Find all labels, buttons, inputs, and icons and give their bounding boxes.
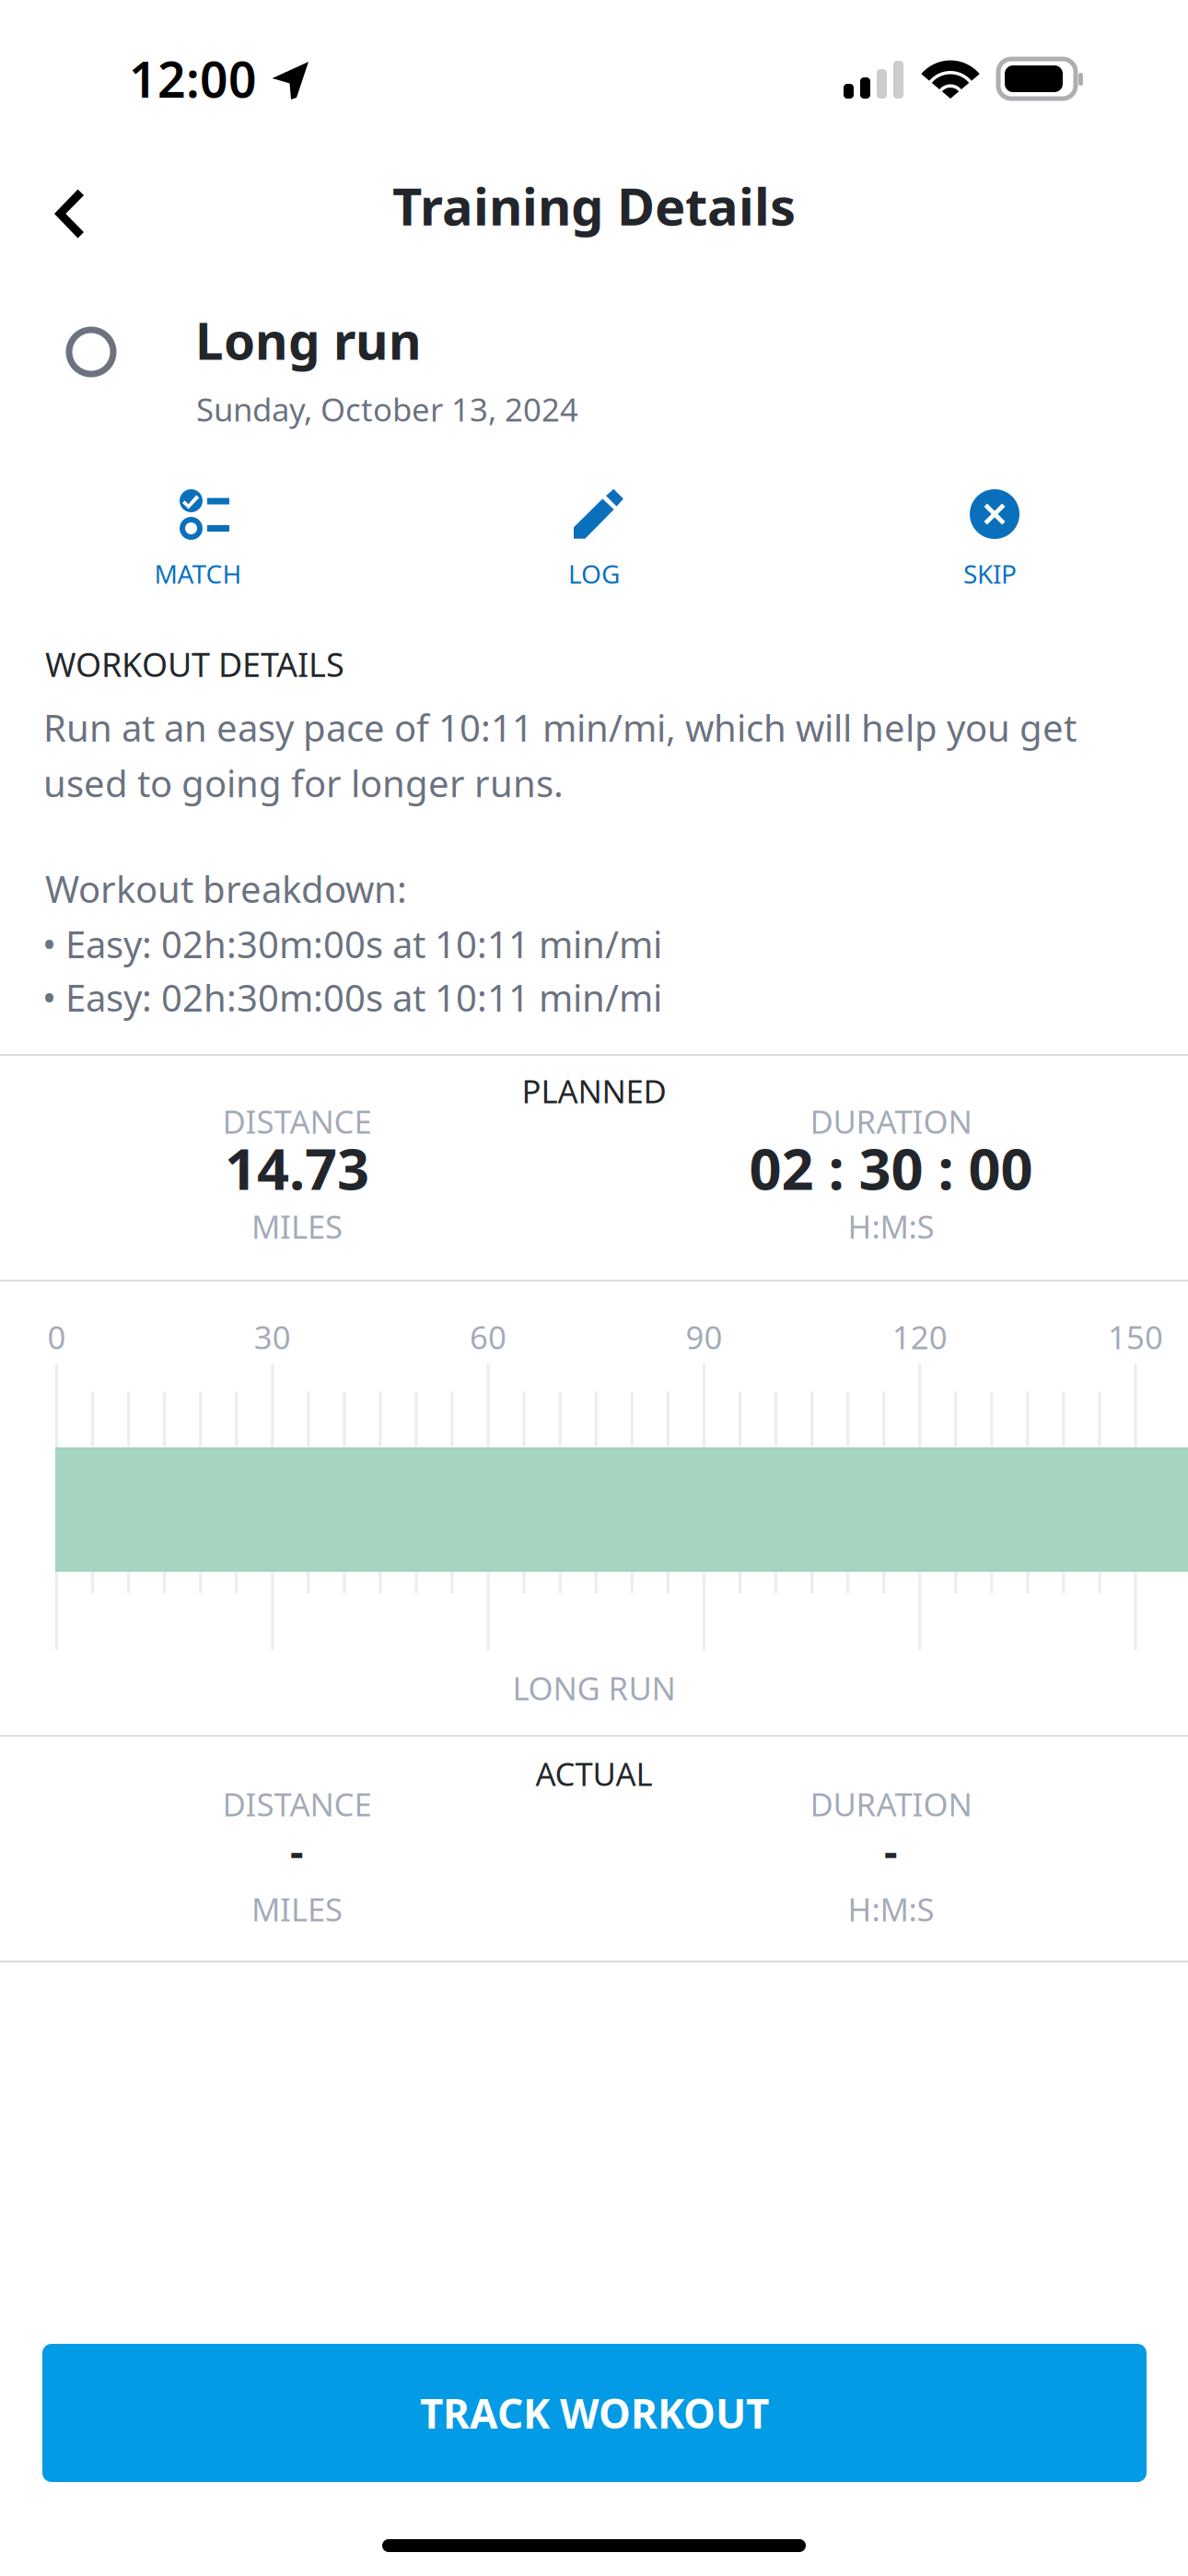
staticText: LONG RUN bbox=[512, 1667, 676, 1709]
staticText: Long run bbox=[195, 307, 422, 374]
button[interactable]: MATCH bbox=[0, 470, 396, 603]
button[interactable]: LOG bbox=[396, 470, 792, 603]
button[interactable]: SKIP bbox=[792, 470, 1188, 603]
button[interactable]: Back bbox=[18, 164, 120, 263]
staticText: Workout breakdown: bbox=[45, 864, 407, 913]
staticText: H:M:S bbox=[848, 1205, 934, 1247]
staticText: DISTANCE bbox=[222, 1783, 372, 1825]
staticText: 0 bbox=[47, 1316, 66, 1358]
button[interactable]: TRACK WORKOUT bbox=[42, 2344, 1147, 2482]
staticText: WORKOUT DETAILS bbox=[45, 642, 344, 686]
staticText: MILES bbox=[251, 1205, 343, 1247]
staticText: Run at an easy pace of 10:11 min/mi, whi… bbox=[43, 703, 1077, 807]
staticText: 90 bbox=[686, 1316, 722, 1358]
staticText: 60 bbox=[470, 1316, 507, 1358]
staticText: Sunday, October 13, 2024 bbox=[196, 388, 578, 430]
staticText: 02 : 30 : 00 bbox=[749, 1130, 1033, 1205]
staticText: 14.73 bbox=[225, 1130, 369, 1205]
staticText: PLANNED bbox=[522, 1070, 666, 1112]
staticText: • Easy: 02h:30m:00s at 10:11 min/mi bbox=[42, 919, 662, 968]
staticText: DURATION bbox=[810, 1100, 972, 1142]
staticText: H:M:S bbox=[848, 1888, 934, 1930]
staticText: 120 bbox=[892, 1316, 947, 1358]
staticText: - bbox=[884, 1822, 898, 1878]
staticText: LOG bbox=[568, 556, 620, 591]
staticText: MATCH bbox=[154, 556, 242, 591]
staticText: DISTANCE bbox=[222, 1100, 372, 1142]
staticText: 12:00 bbox=[129, 46, 257, 111]
staticText: • Easy: 02h:30m:00s at 10:11 min/mi bbox=[42, 973, 662, 1022]
staticText: 30 bbox=[254, 1316, 291, 1358]
staticText: MILES bbox=[251, 1888, 343, 1930]
staticText: Training Details bbox=[392, 171, 796, 240]
staticText: SKIP bbox=[963, 556, 1017, 591]
staticText: 150 bbox=[1108, 1316, 1163, 1358]
staticText: - bbox=[290, 1822, 304, 1878]
staticText: TRACK WORKOUT bbox=[420, 2386, 769, 2440]
staticText: DURATION bbox=[810, 1783, 972, 1825]
staticText: ACTUAL bbox=[536, 1752, 652, 1795]
